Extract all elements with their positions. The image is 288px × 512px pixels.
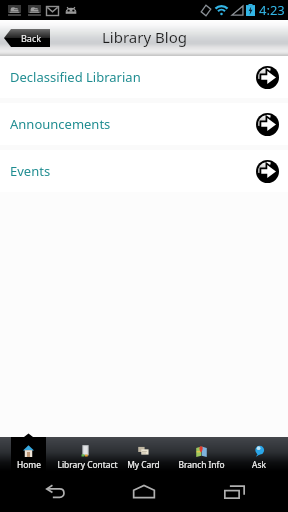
staticText: Back: [21, 32, 42, 44]
staticText: Announcements: [10, 115, 256, 133]
button[interactable]: Recent apps: [199, 471, 269, 512]
button[interactable]: [230, 437, 288, 471]
staticText: My Card: [127, 459, 160, 470]
staticText: Ask: [252, 459, 266, 470]
button[interactable]: [0, 437, 57, 471]
button[interactable]: Announcements: [0, 103, 288, 145]
button[interactable]: [114, 437, 172, 471]
button[interactable]: [172, 437, 230, 471]
button[interactable]: Events: [0, 150, 288, 192]
staticText: 4:23: [259, 1, 285, 19]
staticText: Library Blog: [102, 27, 187, 47]
button[interactable]: [57, 437, 114, 471]
staticText: Library Contact: [57, 459, 114, 470]
button[interactable]: Back: [4, 29, 50, 47]
staticText: Home: [17, 459, 41, 470]
staticText: Branch Info: [178, 459, 225, 470]
button[interactable]: Declassified Librarian: [0, 56, 288, 98]
staticText: Events: [10, 162, 256, 180]
staticText: Declassified Librarian: [10, 68, 256, 86]
button[interactable]: Back: [20, 471, 90, 512]
button[interactable]: Home: [109, 471, 179, 512]
